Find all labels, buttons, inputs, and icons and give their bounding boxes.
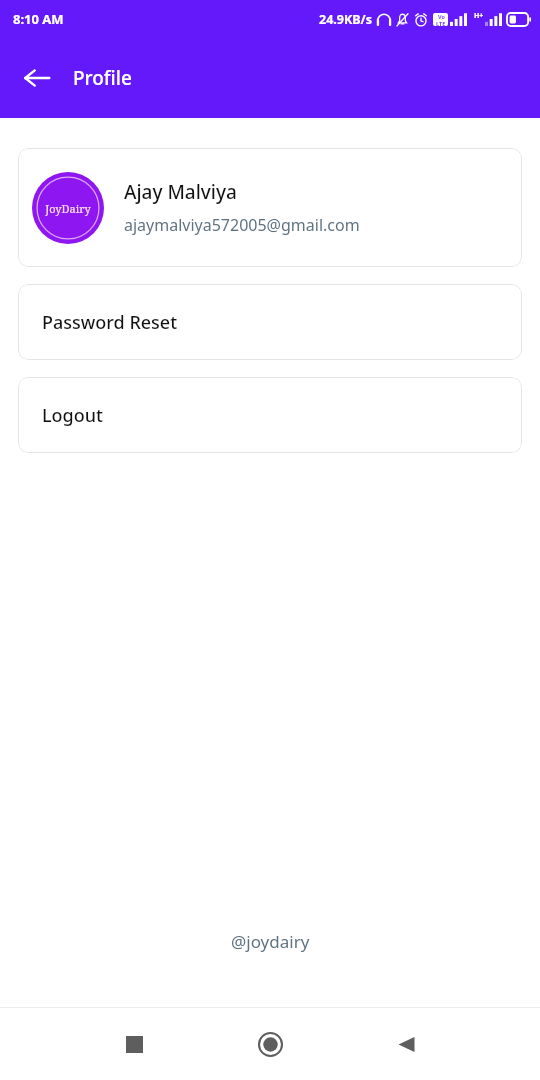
staticText: JoyDairy bbox=[45, 201, 91, 216]
staticText: Ajay Malviya bbox=[124, 179, 237, 205]
button[interactable]: Recent apps bbox=[112, 1022, 156, 1066]
staticText: Logout bbox=[42, 403, 103, 428]
staticText: 8:10 AM bbox=[13, 10, 64, 28]
button[interactable]: Back bbox=[14, 55, 60, 101]
staticText: 24.9KB/s bbox=[319, 11, 373, 28]
staticText: LTE bbox=[436, 20, 446, 26]
staticText: Password Reset bbox=[42, 310, 178, 335]
button[interactable]: JoyDairy bbox=[18, 148, 522, 267]
staticText: Profile bbox=[73, 65, 132, 91]
staticText: @joydairy bbox=[231, 930, 310, 953]
staticText: H+ bbox=[474, 11, 484, 21]
staticText: ajaymalviya572005@gmail.com bbox=[124, 214, 360, 236]
button[interactable]: Back bbox=[384, 1022, 428, 1066]
button[interactable]: Password Reset bbox=[18, 284, 522, 360]
staticText: Vo bbox=[438, 13, 445, 20]
button[interactable]: Home bbox=[248, 1022, 292, 1066]
button[interactable]: Logout bbox=[18, 377, 522, 453]
